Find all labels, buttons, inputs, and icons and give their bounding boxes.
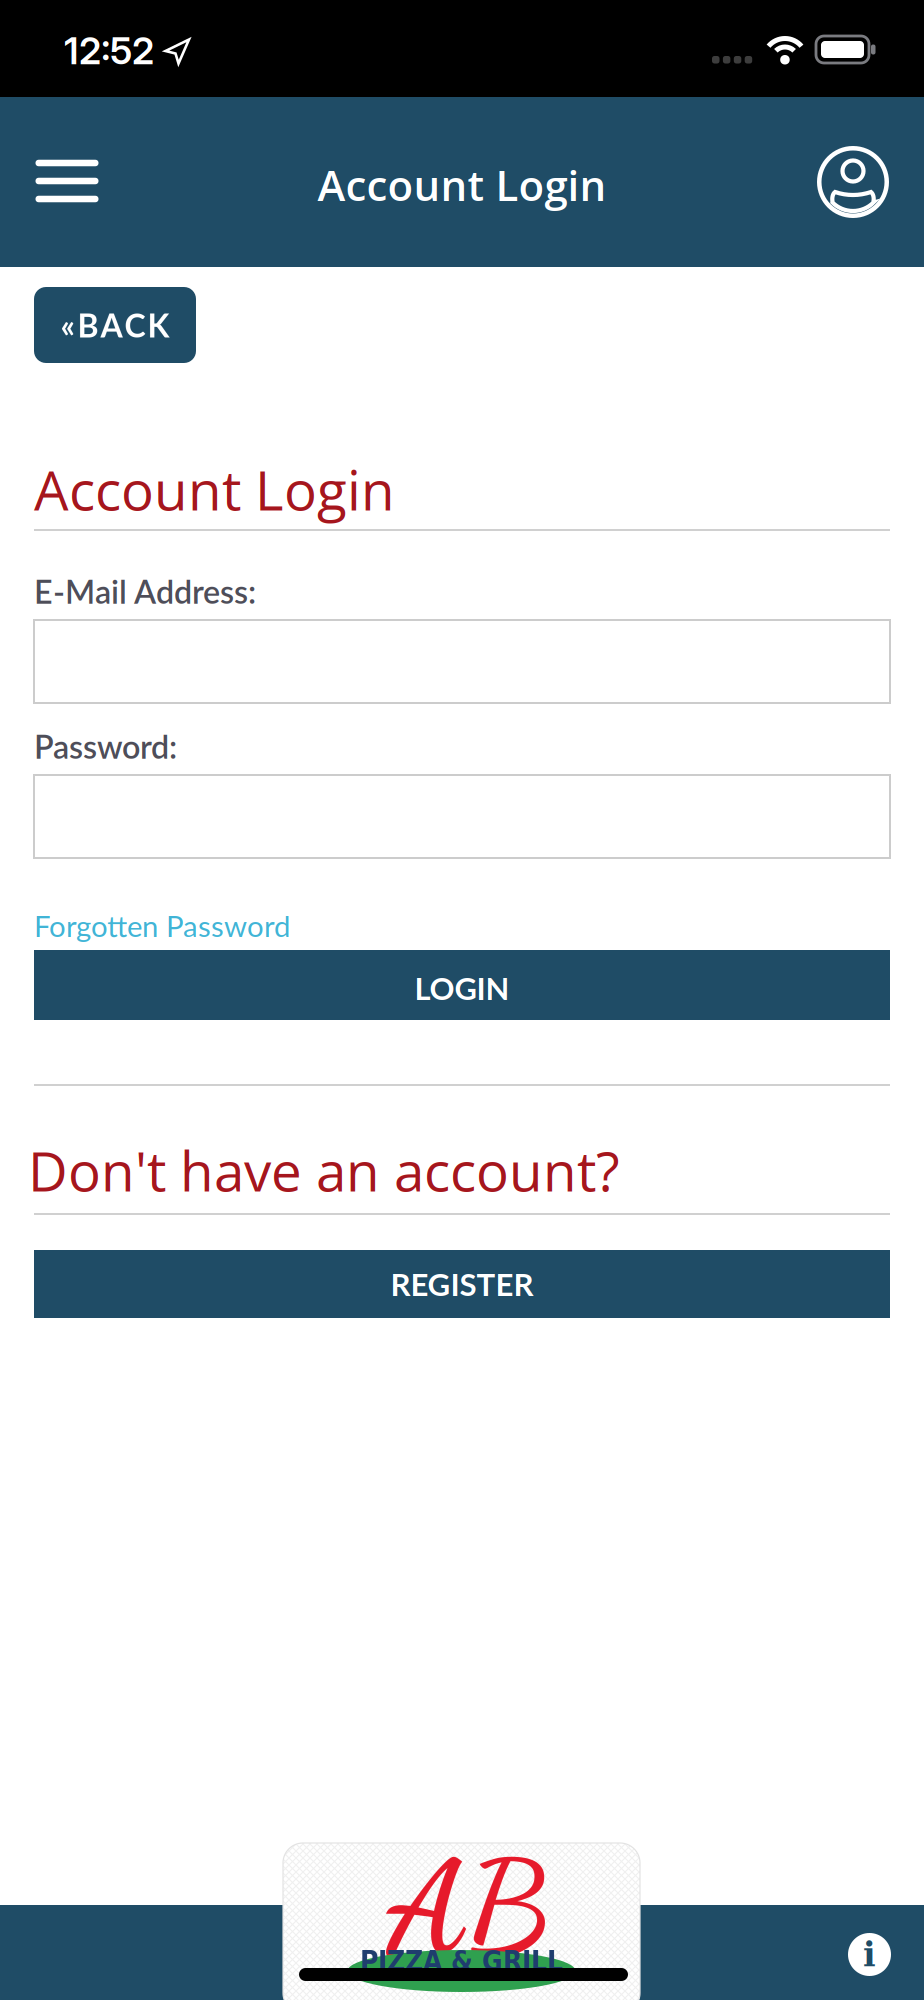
staticText: AB [386,1831,549,1985]
button[interactable]: LOGIN [34,950,890,1020]
button[interactable]: Menu [25,139,109,223]
staticText: « B A C K [60,306,169,344]
staticText: Account Login [317,156,606,213]
staticText: Forgotten Password [34,908,290,943]
button[interactable]: Forgotten Password [34,908,290,943]
button[interactable]: « B A C K [34,287,196,363]
button[interactable]: E-Mail Address [34,620,890,703]
staticText: i [863,1935,876,1974]
staticText: Account Login [34,452,395,526]
button[interactable]: Password [34,775,890,858]
staticText: 12:52 [64,28,154,73]
button[interactable]: Information [848,1933,891,1976]
staticText: E-Mail Address: [34,572,256,611]
staticText: PIZZA & GRILL [360,1945,563,1978]
staticText: Don't have an account? [28,1133,620,1207]
button[interactable]: REGISTER [34,1250,890,1318]
staticText: LOGIN [414,969,509,1006]
staticText: Password: [34,727,177,766]
staticText: REGISTER [390,1265,533,1303]
button[interactable]: Account [815,144,891,220]
